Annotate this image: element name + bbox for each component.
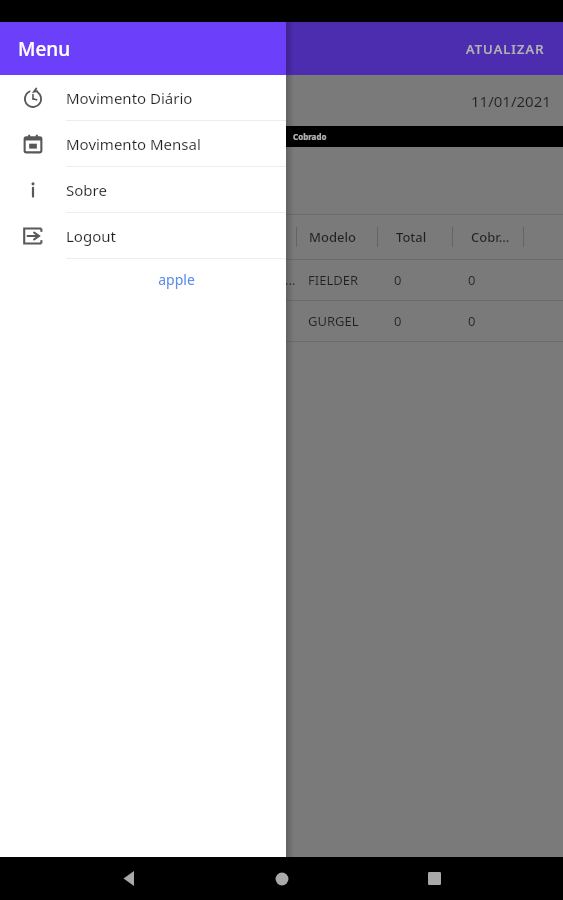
staticText: Movimento Mensal: [66, 134, 201, 154]
staticText: Calculado: [166, 131, 205, 142]
button[interactable]: Logout: [0, 213, 286, 258]
staticText: 11/01/2021: [471, 91, 551, 111]
button[interactable]: Back: [106, 857, 152, 900]
staticText: apple: [158, 270, 195, 289]
staticText: Total: [396, 228, 427, 246]
button[interactable]: ...: [0, 260, 563, 300]
staticText: Menu: [18, 36, 71, 62]
button[interactable]: apple: [158, 270, 195, 289]
button[interactable]: Sobre: [0, 167, 286, 212]
staticText: Sobre: [66, 180, 107, 200]
button[interactable]: Movimento Diário: [0, 75, 286, 120]
staticText: ATUALIZAR: [466, 40, 545, 58]
button[interactable]: Movimento Mensal: [0, 121, 286, 166]
staticText: Cobrado: [293, 131, 327, 142]
other: Movimento Diário: [22, 87, 44, 109]
staticText: 0: [394, 312, 402, 330]
staticText: 0: [468, 271, 476, 289]
staticText: 0: [275, 152, 284, 171]
staticText: Movimento Diário: [66, 88, 193, 108]
staticText: Cobr...: [471, 228, 510, 246]
button[interactable]: Recents: [411, 857, 457, 900]
other: Movimento Mensal: [22, 133, 44, 155]
other: Logout: [22, 225, 44, 247]
staticText: ...: [285, 271, 296, 289]
staticText: 0: [166, 152, 175, 171]
other: Sobre: [22, 179, 44, 201]
staticText: 0: [468, 312, 476, 330]
button[interactable]: GURGEL: [0, 301, 563, 341]
staticText: Logout: [66, 226, 116, 246]
button[interactable]: Modelo: [0, 215, 563, 259]
staticText: GURGEL: [308, 312, 359, 330]
staticText: 0: [394, 271, 402, 289]
staticText: FIELDER: [308, 271, 358, 289]
button[interactable]: ATUALIZAR: [454, 31, 557, 67]
staticText: Modelo: [309, 228, 356, 246]
button[interactable]: Home: [259, 857, 305, 900]
